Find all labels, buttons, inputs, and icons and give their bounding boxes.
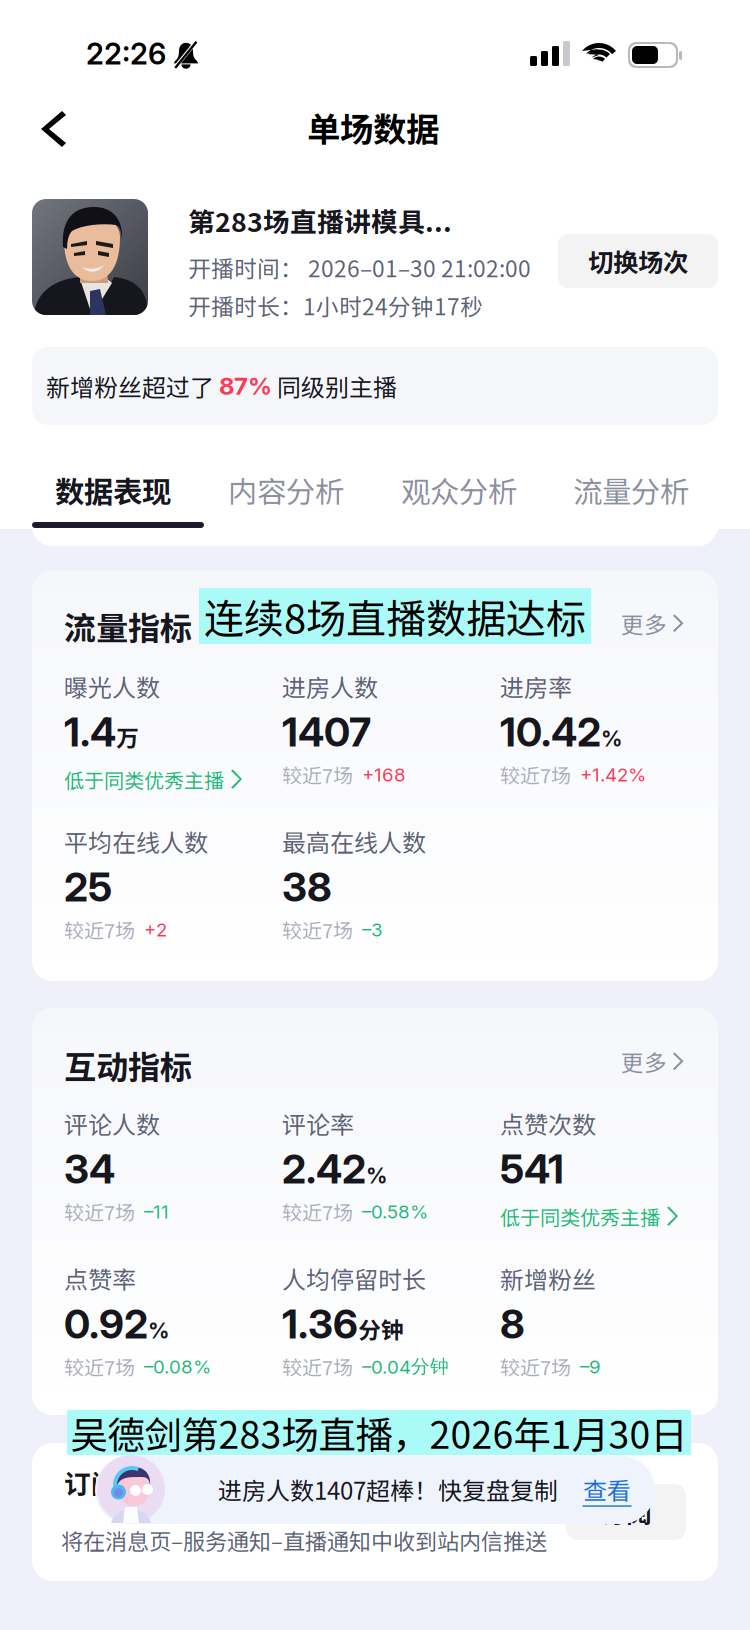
staticText: 第283场直播讲模具...	[188, 201, 452, 240]
button[interactable]: 更多	[621, 607, 685, 640]
staticText: 8	[500, 1300, 525, 1348]
staticText: –0.58%	[362, 1200, 428, 1223]
staticText: 切换场次	[588, 243, 688, 279]
staticText: 连续8场直播数据达标	[204, 587, 586, 645]
staticText: 最高在线人数	[282, 824, 426, 859]
staticText: 541	[500, 1145, 564, 1193]
staticText: 数据表现	[55, 469, 171, 511]
staticText: 较近7场	[282, 1352, 353, 1381]
staticText: 流量分析	[573, 469, 689, 511]
staticText: +168	[362, 763, 406, 786]
staticText: 新增粉丝	[500, 1261, 596, 1296]
staticText: 1.4	[64, 708, 116, 756]
staticText: %	[148, 1318, 169, 1344]
staticText: 新增粉丝超过了	[46, 369, 219, 403]
staticText: 平均在线人数	[64, 824, 208, 859]
staticText: 较近7场	[64, 1352, 135, 1381]
staticText: 点赞率	[64, 1261, 136, 1296]
staticText: 0.92	[64, 1300, 148, 1348]
staticText: 低于同类优秀主播	[64, 765, 224, 794]
staticText: +1.42%	[580, 763, 646, 786]
staticText: –9	[580, 1355, 601, 1378]
staticText: 人均停留时长	[282, 1261, 426, 1296]
staticText: 1407	[282, 708, 371, 756]
staticText: +2	[144, 918, 167, 941]
staticText: 较近7场	[282, 760, 353, 789]
staticText: 内容分析	[228, 469, 344, 511]
button[interactable]: Back	[40, 109, 104, 173]
staticText: –0.08%	[144, 1355, 211, 1378]
staticText: 较近7场	[64, 915, 135, 944]
staticText: 观众分析	[401, 469, 517, 511]
staticText: 分钟	[358, 1312, 404, 1345]
button[interactable]: 更多	[621, 1045, 685, 1078]
staticText: 10.42	[500, 708, 601, 756]
staticText: 较近7场	[282, 915, 353, 944]
staticText: 将在消息页–服务通知–直播通知中收到站内信推送	[61, 1524, 547, 1556]
staticText: 较近7场	[64, 1197, 135, 1226]
staticText: 更多	[621, 607, 667, 640]
button[interactable]: 查看	[583, 1472, 631, 1507]
staticText: 互动指标	[64, 1042, 192, 1088]
staticText: 点赞次数	[500, 1106, 596, 1141]
staticText: 87%	[219, 371, 272, 400]
staticText: 低于同类优秀主播	[500, 1202, 660, 1231]
staticText: 25	[64, 863, 112, 911]
staticText: 较近7场	[500, 1352, 571, 1381]
staticText: 进房人数	[282, 669, 378, 704]
staticText: 订阅开播提醒	[64, 1463, 226, 1502]
button[interactable]: 内容分析	[206, 460, 366, 520]
button[interactable]: 切换场次	[558, 234, 718, 288]
staticText: 单场数据	[307, 103, 439, 151]
button[interactable]: 观众分析	[379, 460, 539, 520]
staticText: 评论人数	[64, 1106, 160, 1141]
staticText: 万	[116, 720, 139, 753]
staticText: –3	[362, 918, 383, 941]
staticText: 较近7场	[500, 760, 571, 789]
staticText: 较近7场	[282, 1197, 353, 1226]
staticText: 更多	[621, 1045, 667, 1078]
staticText: –0.04分钟	[362, 1355, 449, 1378]
staticText: 进房人数1407超棒！快复盘复制	[218, 1472, 558, 1507]
staticText: –11	[144, 1200, 169, 1223]
staticText: %	[601, 726, 622, 752]
staticText: 开播时长：1小时24分钟17秒	[188, 289, 483, 322]
staticText: 同级别主播	[272, 369, 397, 403]
staticText: %	[366, 1163, 387, 1189]
staticText: 曝光人数	[64, 669, 160, 704]
staticText: 38	[282, 863, 332, 911]
staticText: 订阅	[601, 1494, 651, 1530]
staticText: 1.36	[282, 1300, 358, 1348]
staticText: 34	[64, 1145, 115, 1193]
staticText: 查看	[583, 1472, 631, 1507]
staticText: 流量指标	[64, 603, 192, 649]
staticText: 进房率	[500, 669, 572, 704]
staticText: 吴德剑第283场直播，2026年1月30日	[70, 1405, 687, 1460]
button[interactable]: 数据表现	[33, 460, 193, 520]
button[interactable]: 流量分析	[551, 460, 711, 520]
staticText: 22:26	[86, 36, 166, 71]
staticText: 评论率	[282, 1106, 354, 1141]
staticText: 开播时间： 2026–01–30 21:02:00	[188, 251, 531, 284]
staticText: 2.42	[282, 1145, 366, 1193]
button[interactable]: 订阅	[566, 1484, 686, 1540]
